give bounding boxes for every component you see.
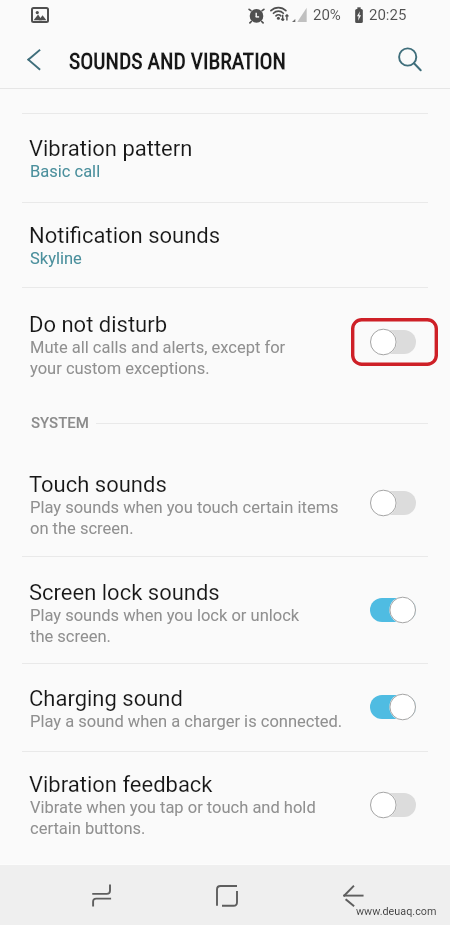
staticText: Do not disturb: [29, 312, 168, 338]
staticText: Mute all calls and alerts, except for: [30, 338, 286, 357]
staticText: Basic call: [30, 162, 101, 181]
staticText: 20%: [313, 6, 341, 24]
button[interactable]: Switch on: [369, 693, 417, 721]
staticText: the screen.: [30, 627, 111, 646]
staticText: Vibrate when you tap or touch and hold: [30, 798, 316, 817]
staticText: on the screen.: [30, 519, 134, 538]
button[interactable]: Switch off: [369, 489, 417, 517]
staticText: SYSTEM: [31, 414, 89, 432]
staticText: Skyline: [30, 249, 82, 268]
button[interactable]: [0, 556, 450, 663]
button[interactable]: Recent apps: [78, 868, 126, 916]
button[interactable]: Home: [205, 868, 249, 912]
staticText: your custom exceptions.: [30, 359, 210, 378]
staticText: Charging sound: [29, 686, 183, 712]
staticText: Play sounds when you touch certain items: [30, 498, 339, 517]
button[interactable]: Back: [334, 868, 378, 912]
button[interactable]: [0, 287, 450, 396]
staticText: Play a sound when a charger is connected…: [30, 712, 343, 731]
button[interactable]: [0, 663, 450, 751]
button[interactable]: [0, 449, 450, 556]
staticText: SOUNDS AND VIBRATION: [69, 49, 287, 74]
staticText: Vibration pattern: [29, 136, 193, 162]
button[interactable]: Switch off: [369, 791, 417, 819]
staticText: Play sounds when you lock or unlock: [30, 606, 300, 625]
button[interactable]: Search: [390, 40, 428, 78]
staticText: Vibration feedback: [29, 772, 213, 798]
button[interactable]: [0, 751, 450, 858]
staticText: www.deuaq.com: [356, 905, 437, 918]
button[interactable]: Switch off: [369, 328, 417, 356]
button[interactable]: [0, 113, 450, 202]
staticText: Notification sounds: [29, 223, 221, 249]
button[interactable]: [0, 202, 450, 287]
button[interactable]: Switch on: [369, 596, 417, 624]
staticText: 20:25: [369, 6, 407, 24]
staticText: certain buttons.: [30, 819, 146, 838]
button[interactable]: Navigate up: [16, 42, 52, 78]
staticText: Screen lock sounds: [29, 580, 220, 606]
staticText: Touch sounds: [29, 472, 167, 498]
